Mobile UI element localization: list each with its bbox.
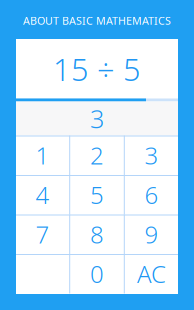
button[interactable]: 6 — [125, 175, 178, 214]
button[interactable]: 9 — [125, 214, 178, 254]
button[interactable]: 7 — [16, 214, 69, 254]
staticText: 8 — [90, 218, 104, 250]
button[interactable]: AC — [125, 254, 178, 293]
button[interactable]: 3 — [125, 135, 178, 175]
staticText: 15 ÷ 5 — [53, 49, 141, 89]
button[interactable]: 8 — [70, 214, 124, 254]
button[interactable]: 5 — [70, 175, 124, 214]
staticText: 0 — [90, 258, 104, 290]
staticText: 6 — [145, 179, 159, 211]
staticText: 2 — [90, 139, 104, 171]
staticText: 4 — [35, 179, 49, 211]
staticText: AC — [137, 258, 166, 290]
staticText: ABOUT BASIC MATHEMATICS — [23, 13, 171, 28]
button[interactable]: 0 — [70, 254, 124, 293]
staticText: 1 — [35, 139, 49, 171]
staticText: 9 — [145, 218, 159, 250]
staticText: 5 — [90, 179, 104, 211]
staticText: 7 — [35, 218, 49, 250]
button[interactable]: 1 — [16, 135, 69, 175]
button[interactable]: 2 — [70, 135, 124, 175]
staticText: 3 — [90, 102, 104, 135]
button[interactable]: 4 — [16, 175, 69, 214]
staticText: 3 — [145, 139, 159, 171]
